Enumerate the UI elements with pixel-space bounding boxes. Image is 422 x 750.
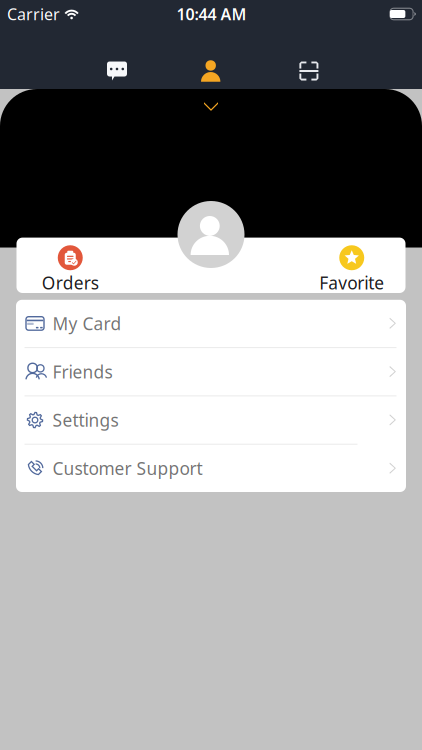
- staticText: Settings: [52, 408, 118, 431]
- button[interactable]: Messages: [107, 61, 127, 80]
- button[interactable]: Favorite: [298, 238, 405, 293]
- button[interactable]: Settings: [16, 396, 406, 444]
- staticText: 10:44 AM: [176, 3, 246, 25]
- button[interactable]: Customer Support: [16, 445, 406, 492]
- staticText: Friends: [52, 360, 112, 383]
- button[interactable]: Profile: [201, 60, 220, 82]
- staticText: My Card: [52, 312, 121, 335]
- staticText: Carrier: [7, 3, 60, 25]
- staticText: Orders: [42, 271, 99, 294]
- button[interactable]: Scan: [299, 61, 318, 80]
- staticText: Customer Support: [52, 457, 202, 480]
- button[interactable]: Friends: [16, 348, 406, 395]
- button[interactable]: Orders: [16, 238, 124, 293]
- staticText: Favorite: [319, 271, 384, 294]
- button[interactable]: My Card: [16, 300, 406, 347]
